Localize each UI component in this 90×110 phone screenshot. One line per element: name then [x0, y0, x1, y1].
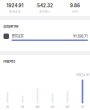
staticText: 12月: [65, 105, 70, 108]
button[interactable]: 餐饮美食: [0, 28, 90, 41]
staticText: 1月: [80, 105, 84, 108]
staticText: 8月: [5, 105, 9, 108]
staticText: 1924.91: [6, 3, 23, 8]
staticText: 月度对比: [3, 58, 15, 63]
staticText: 本月收入: [39, 9, 51, 13]
staticText: 支出排行榜: [3, 23, 18, 28]
staticText: 本月支出: [9, 9, 21, 13]
staticText: ¥1924.91: [76, 73, 89, 77]
staticText: 9.86: [70, 3, 80, 8]
staticText: 日均: [72, 9, 78, 13]
staticText: 11月: [50, 105, 55, 108]
staticText: 542.32: [37, 3, 53, 8]
staticText: 10月: [35, 105, 40, 108]
staticText: ¥1326.71: [73, 33, 88, 38]
staticText: 餐饮美食: [11, 34, 23, 38]
staticText: 9月: [20, 105, 24, 108]
